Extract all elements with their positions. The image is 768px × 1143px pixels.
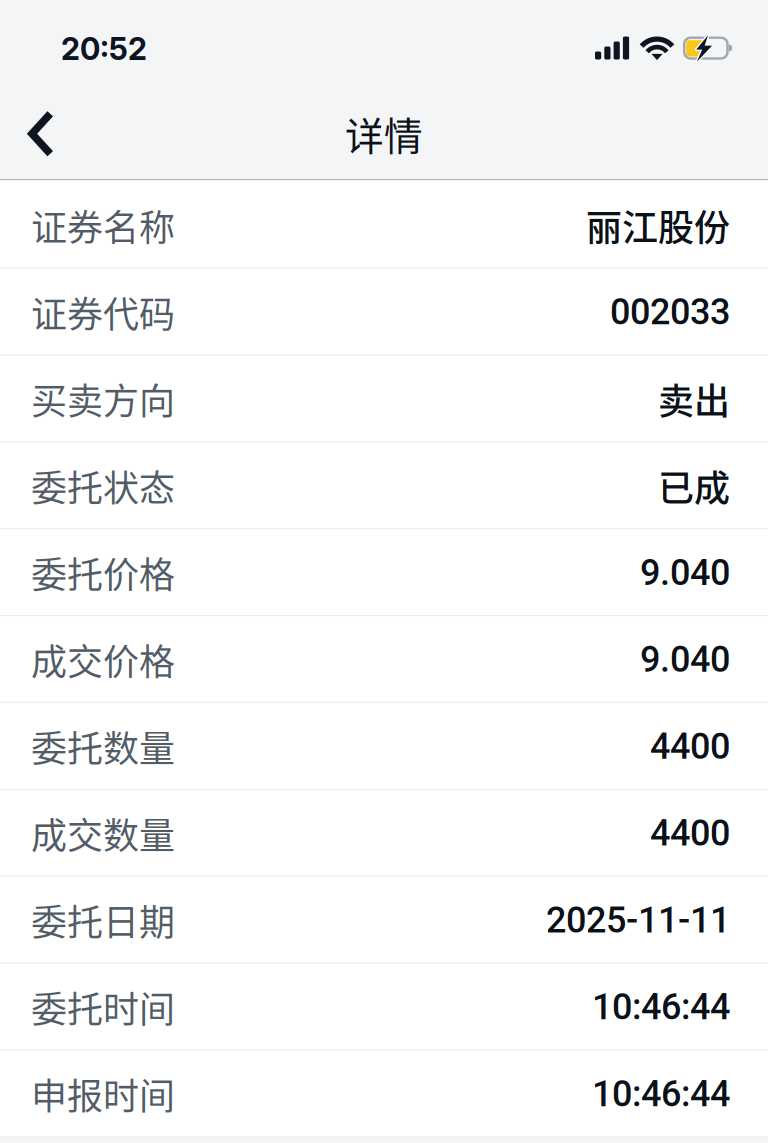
button[interactable]: 成交价格 xyxy=(0,616,768,703)
button[interactable]: 委托价格 xyxy=(0,529,768,616)
staticText: 4400 xyxy=(650,725,730,767)
staticText: 申报时间 xyxy=(31,1068,175,1120)
button[interactable]: 买卖方向 xyxy=(0,356,768,442)
staticText: 9.040 xyxy=(640,638,730,681)
staticText: 证券名称 xyxy=(31,199,175,251)
staticText: 已成 xyxy=(658,460,730,512)
staticText: 4400 xyxy=(650,812,730,854)
button[interactable]: 证券代码 xyxy=(0,269,768,356)
staticText: 详情 xyxy=(345,106,423,162)
button[interactable]: 证券名称 xyxy=(0,182,768,269)
staticText: 丽江股份 xyxy=(586,199,730,251)
staticText: 委托价格 xyxy=(31,547,175,599)
staticText: 10:46:44 xyxy=(592,1073,730,1115)
button[interactable]: 委托状态 xyxy=(0,442,768,529)
staticText: 委托状态 xyxy=(31,460,175,512)
staticText: 证券代码 xyxy=(31,286,175,338)
button[interactable]: 委托数量 xyxy=(0,703,768,790)
staticText: 委托时间 xyxy=(31,981,175,1033)
staticText: 成交价格 xyxy=(31,633,175,686)
staticText: 委托数量 xyxy=(31,720,175,772)
staticText: 10:46:44 xyxy=(592,986,730,1028)
button[interactable]: 成交数量 xyxy=(0,790,768,877)
button[interactable]: Back xyxy=(0,89,86,179)
button[interactable]: 委托日期 xyxy=(0,877,768,964)
staticText: 002033 xyxy=(610,291,730,333)
staticText: 卖出 xyxy=(658,373,730,425)
button[interactable]: 委托时间 xyxy=(0,964,768,1051)
staticText: 9.040 xyxy=(640,552,730,594)
staticText: 20:52 xyxy=(61,30,147,67)
staticText: 2025-11-11 xyxy=(546,899,730,941)
staticText: 买卖方向 xyxy=(31,373,175,425)
staticText: 成交数量 xyxy=(31,807,175,859)
staticText: 委托日期 xyxy=(31,894,175,946)
button[interactable]: 申报时间 xyxy=(0,1051,768,1137)
